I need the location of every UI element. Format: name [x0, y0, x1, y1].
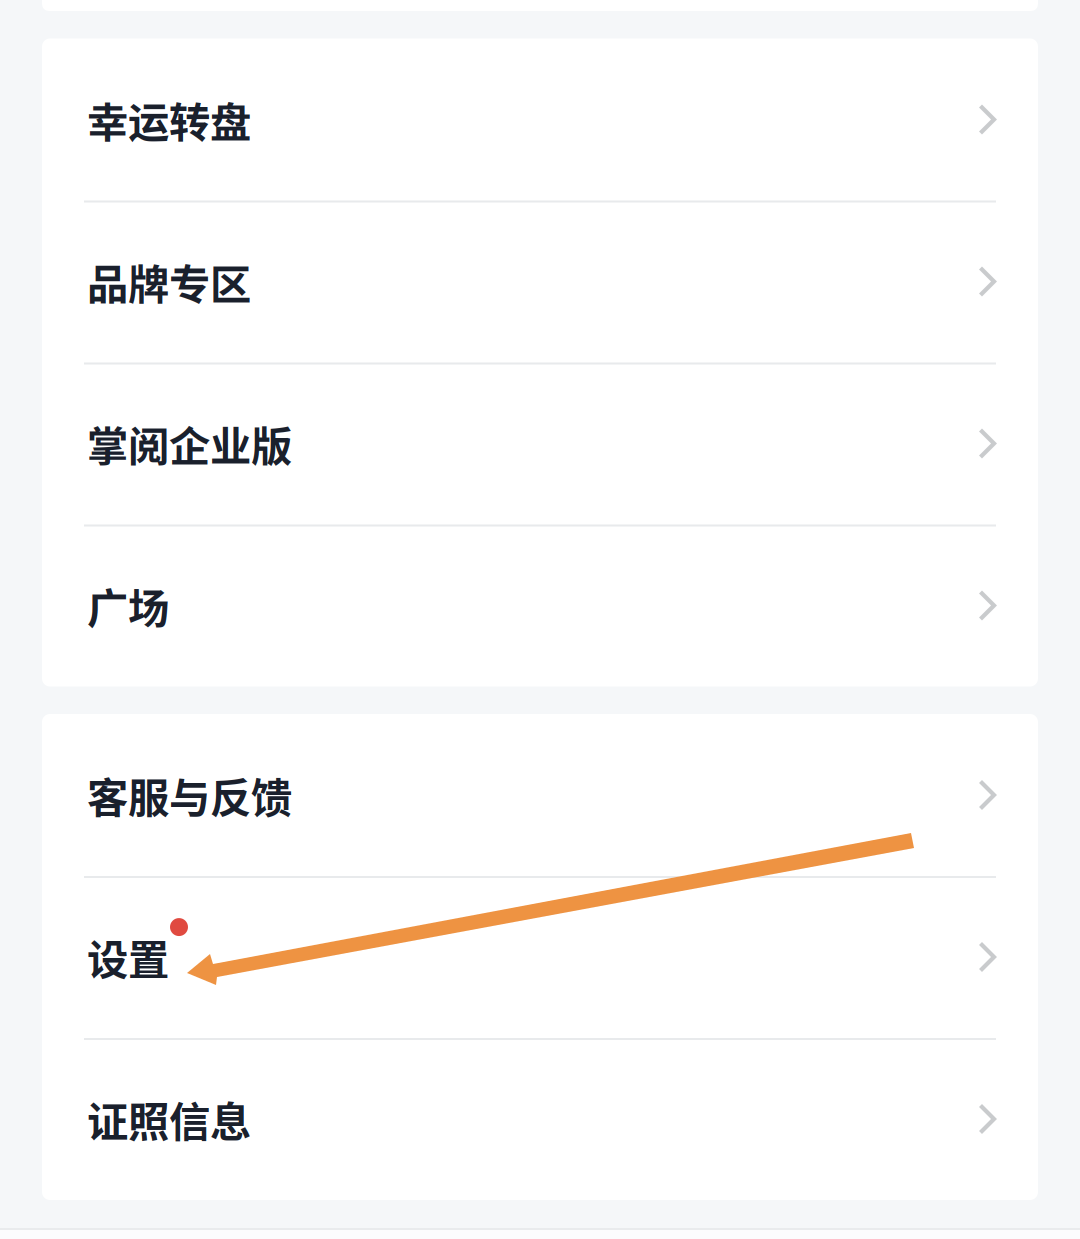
button[interactable]: 设置 — [42, 876, 1038, 1038]
staticText: 品牌专区 — [87, 252, 251, 311]
button[interactable]: 幸运转盘 — [42, 38, 1038, 200]
staticText: 掌阅企业版 — [87, 414, 292, 473]
staticText: 幸运转盘 — [87, 90, 251, 149]
staticText: 客服与反馈 — [87, 765, 292, 825]
staticText: 广场 — [87, 576, 169, 635]
staticText: 证照信息 — [87, 1089, 251, 1149]
button[interactable]: 品牌专区 — [42, 200, 1038, 362]
button[interactable]: 客服与反馈 — [42, 714, 1038, 876]
staticText: 设置 — [87, 927, 169, 987]
button[interactable]: 广场 — [42, 524, 1038, 686]
button[interactable]: 证照信息 — [42, 1038, 1038, 1200]
button[interactable]: 掌阅企业版 — [42, 362, 1038, 524]
